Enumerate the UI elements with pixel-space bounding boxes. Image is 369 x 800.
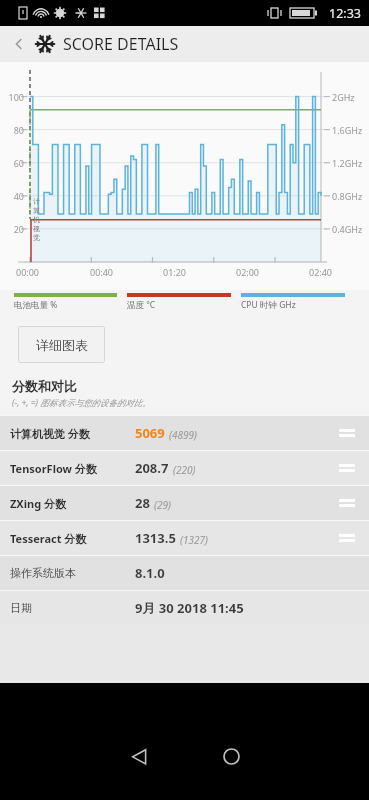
button[interactable]: Back [115,732,163,780]
staticText: (1327) [180,533,208,547]
staticText: 01:20 [163,266,187,278]
button[interactable]: 计算机视觉 分数 [0,416,369,450]
staticText: 00:40 [90,266,114,278]
staticText: 0.8GHz [332,190,363,202]
button[interactable]: 详细图表 [18,326,105,363]
staticText: 02:00 [236,266,260,278]
button[interactable]: Home [207,732,255,780]
staticText: 电池电量 % [14,299,58,311]
staticText: 1313.5 [135,529,176,547]
staticText: 100 [0,91,24,103]
staticText: 12:33 [329,5,361,22]
staticText: 日期 [10,601,32,615]
staticText: 1.6GHz [332,124,363,136]
staticText: 操作系统版本 [10,566,76,580]
staticText: 28 [135,494,150,512]
staticText: 5069 [135,424,165,442]
button[interactable]: ZXing 分数 [0,486,369,520]
staticText: (220) [173,463,196,477]
staticText: 1.2GHz [332,157,363,169]
staticText: 8.1.0 [135,564,165,582]
staticText: 208.7 [135,459,169,477]
staticText: 视 [33,224,40,233]
staticText: (4899) [169,428,197,442]
staticText: Tesseract 分数 [10,531,87,546]
staticText: CPU 时钟 GHz [241,299,296,311]
staticText: 9月 30 2018 11:45 [135,599,244,617]
button[interactable]: TensorFlow 分数 [0,451,369,485]
staticText: 温度 °C [127,299,156,311]
staticText: 2GHz [332,91,355,103]
button[interactable]: 操作系统版本 [0,556,369,590]
staticText: 60 [0,157,24,169]
staticText: 算 [33,206,40,215]
staticText: (-, +, =) 图标表示与您的设备的对比。 [12,397,151,409]
staticText: 觉 [33,233,40,242]
staticText: 00:00 [16,266,40,278]
staticText: 20 [0,223,24,235]
button[interactable]: Back [4,29,34,59]
staticText: 0.4GHz [332,223,363,235]
staticText: 计 [33,197,40,206]
button[interactable]: Tesseract 分数 [0,521,369,555]
staticText: 详细图表 [36,337,88,353]
staticText: SCORE DETAILS [63,33,179,55]
staticText: (29) [154,498,171,512]
staticText: TensorFlow 分数 [10,461,97,476]
staticText: 40 [0,190,24,202]
staticText: 80 [0,124,24,136]
staticText: 计算机视觉 分数 [10,426,90,441]
button[interactable]: 日期 [0,591,369,625]
staticText: 02:40 [309,266,333,278]
staticText: 机 [33,215,40,224]
staticText: 分数和对比 [12,378,77,394]
staticText: ZXing 分数 [10,496,66,511]
